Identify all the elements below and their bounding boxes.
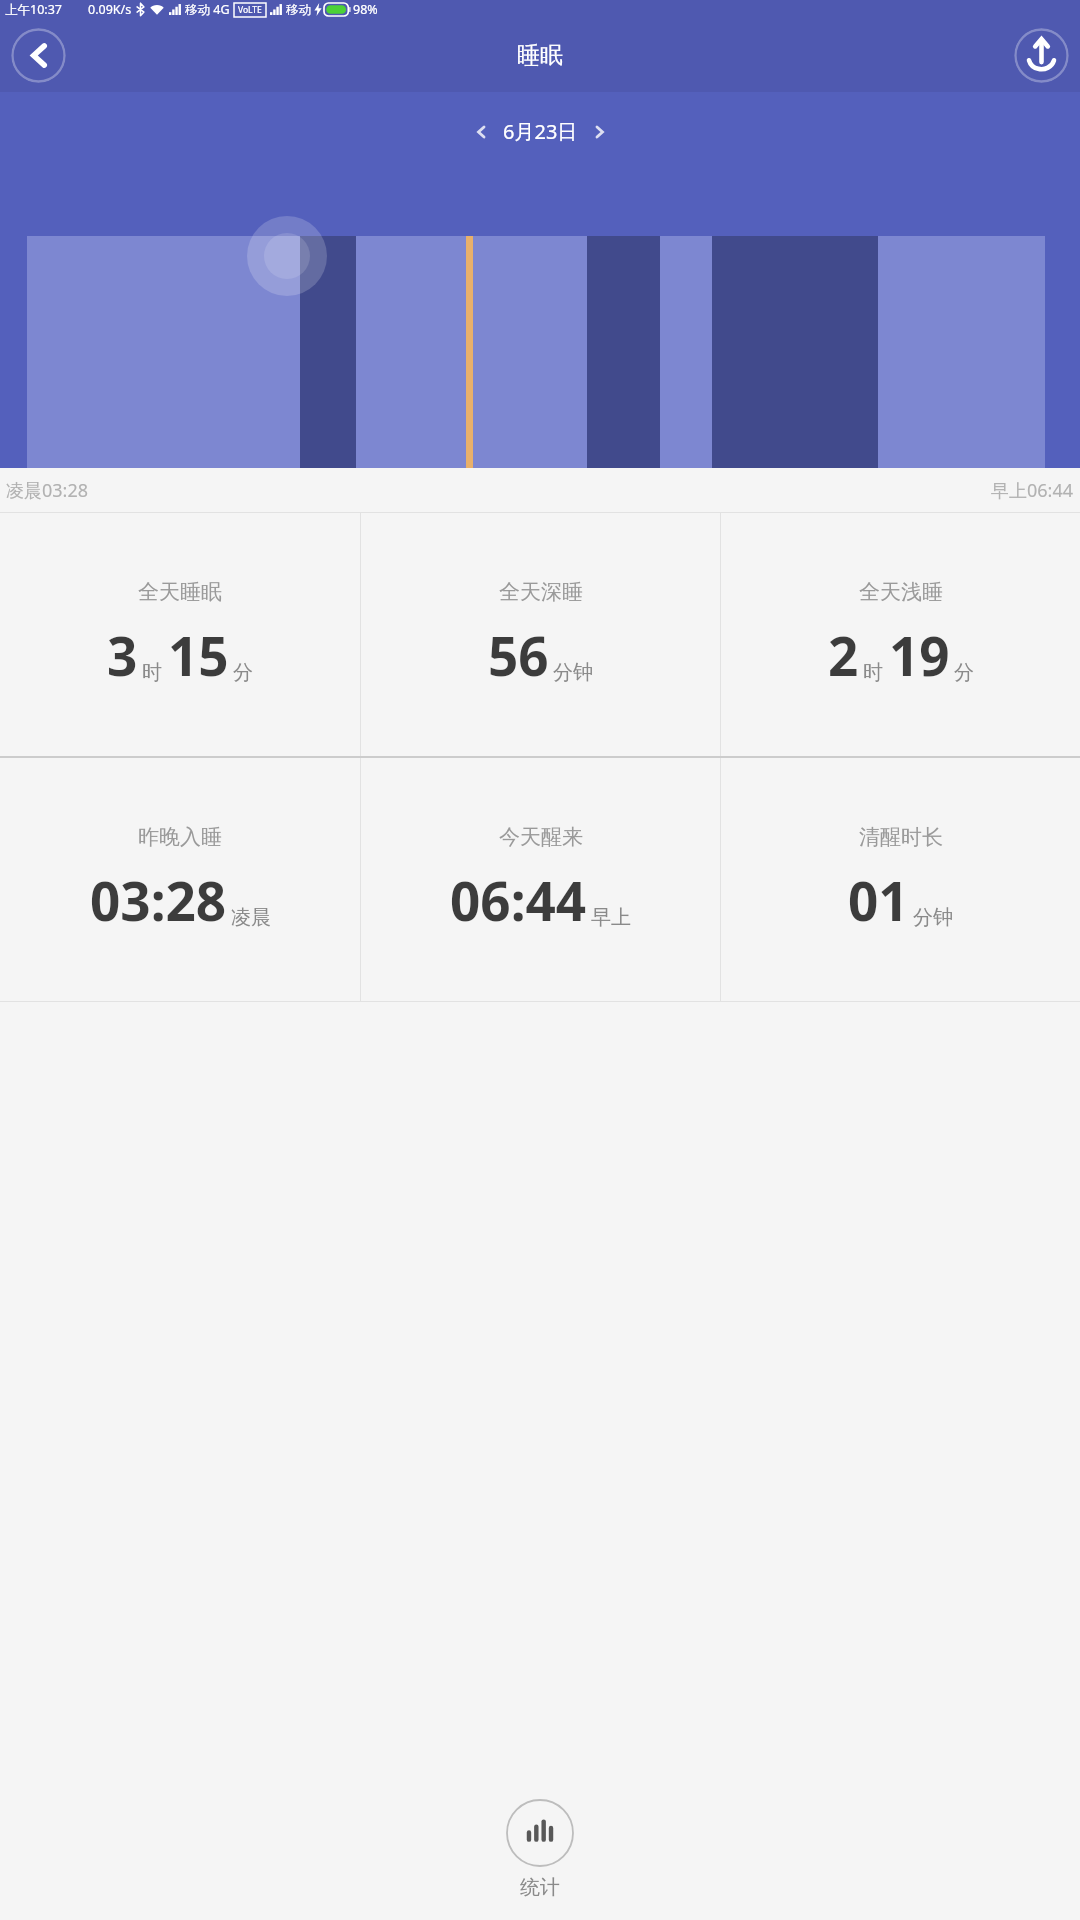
button[interactable]: 全天睡眠 [0, 513, 360, 756]
button[interactable]: 清醒时长 [721, 758, 1080, 1001]
staticText: 今天醒来 [499, 824, 583, 850]
staticText: 0.09K/s [88, 1, 132, 18]
staticText: 移动 4G [185, 1, 230, 18]
staticText: 全天睡眠 [138, 579, 222, 605]
button[interactable]: 分享 [1014, 28, 1069, 83]
staticText: 分钟 [553, 660, 593, 685]
staticText: 03:28 [90, 864, 227, 936]
button[interactable]: 今天醒来 [361, 758, 720, 1001]
staticText: 6月23日 [503, 118, 578, 145]
button[interactable]: 昨晚入睡 [0, 758, 360, 1001]
staticText: 早上 [591, 905, 631, 930]
staticText: 睡眠 [517, 41, 563, 70]
staticText: 01 [848, 864, 909, 936]
staticText: 凌晨 [231, 905, 271, 930]
staticText: 分 [233, 660, 253, 685]
staticText: 19 [889, 619, 950, 691]
staticText: 上午10:37 [5, 1, 62, 18]
staticText: 时 [142, 660, 162, 685]
staticText: VoLTE [238, 4, 262, 16]
staticText: 06:44 [450, 864, 587, 936]
staticText: 分 [954, 660, 974, 685]
staticText: 凌晨03:28 [6, 478, 89, 503]
staticText: 全天浅睡 [859, 579, 943, 605]
staticText: 清醒时长 [859, 824, 943, 850]
staticText: 昨晚入睡 [138, 824, 222, 850]
button[interactable]: 全天浅睡 [721, 513, 1080, 756]
button[interactable]: 睡眠图表 [0, 236, 1080, 468]
staticText: 3 [107, 619, 138, 691]
staticText: 早上06:44 [991, 478, 1074, 503]
button[interactable]: 全天深睡 [361, 513, 720, 756]
staticText: 2 [828, 619, 859, 691]
staticText: 15 [168, 619, 229, 691]
button[interactable]: 统计 [0, 1799, 1080, 1900]
staticText: 统计 [520, 1875, 560, 1900]
staticText: 56 [488, 619, 549, 691]
staticText: 全天深睡 [499, 579, 583, 605]
staticText: 分钟 [913, 905, 953, 930]
button[interactable]: 6月23日 [464, 114, 617, 149]
button[interactable]: 返回 [11, 28, 66, 83]
staticText: 移动 [286, 2, 311, 18]
staticText: 98% [353, 1, 378, 18]
staticText: 时 [863, 660, 883, 685]
